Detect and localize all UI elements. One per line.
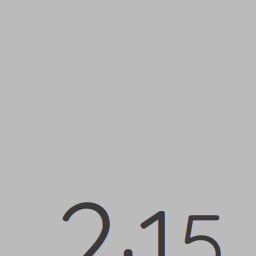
staticText: 2.1 5	[56, 150, 226, 256]
